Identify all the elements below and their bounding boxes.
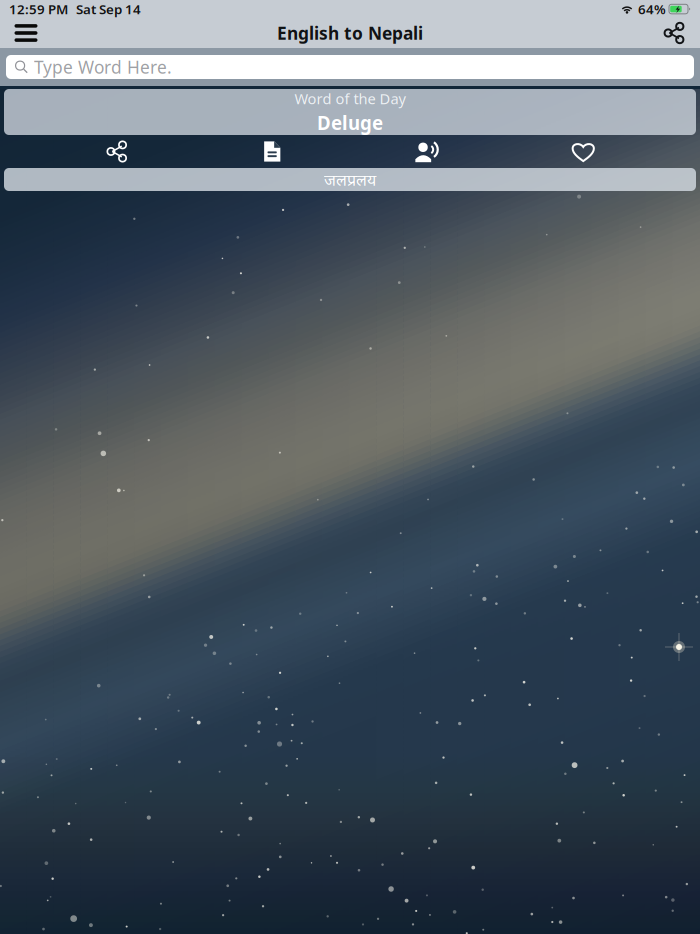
button[interactable]: Add to favourites <box>505 135 661 168</box>
button[interactable]: Share <box>652 18 696 48</box>
button[interactable]: Definition <box>194 135 350 168</box>
staticText: English to Nepali <box>277 21 423 44</box>
staticText: Word of the Day <box>294 89 405 108</box>
button[interactable]: Word of the Day <box>4 89 696 135</box>
staticText: Sat Sep 14 <box>76 0 141 18</box>
button[interactable]: Share word <box>39 135 194 168</box>
button[interactable]: Nepali translation <box>4 168 696 191</box>
staticText: 12:59 PM <box>9 0 68 18</box>
staticText: 64% <box>638 0 666 18</box>
button[interactable]: Search <box>6 55 694 79</box>
button[interactable]: Pronounce <box>350 135 505 168</box>
staticText: Type Word Here. <box>34 55 172 78</box>
staticText: Deluge <box>317 110 383 135</box>
button[interactable]: Menu <box>4 18 48 48</box>
staticText: जलप्रलय <box>324 169 376 190</box>
